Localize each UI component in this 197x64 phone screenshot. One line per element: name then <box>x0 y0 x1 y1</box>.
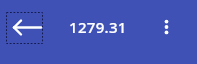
staticText: 1279.31 <box>69 17 127 37</box>
button[interactable]: More options <box>153 12 180 41</box>
button[interactable]: Navigate up <box>6 12 43 44</box>
